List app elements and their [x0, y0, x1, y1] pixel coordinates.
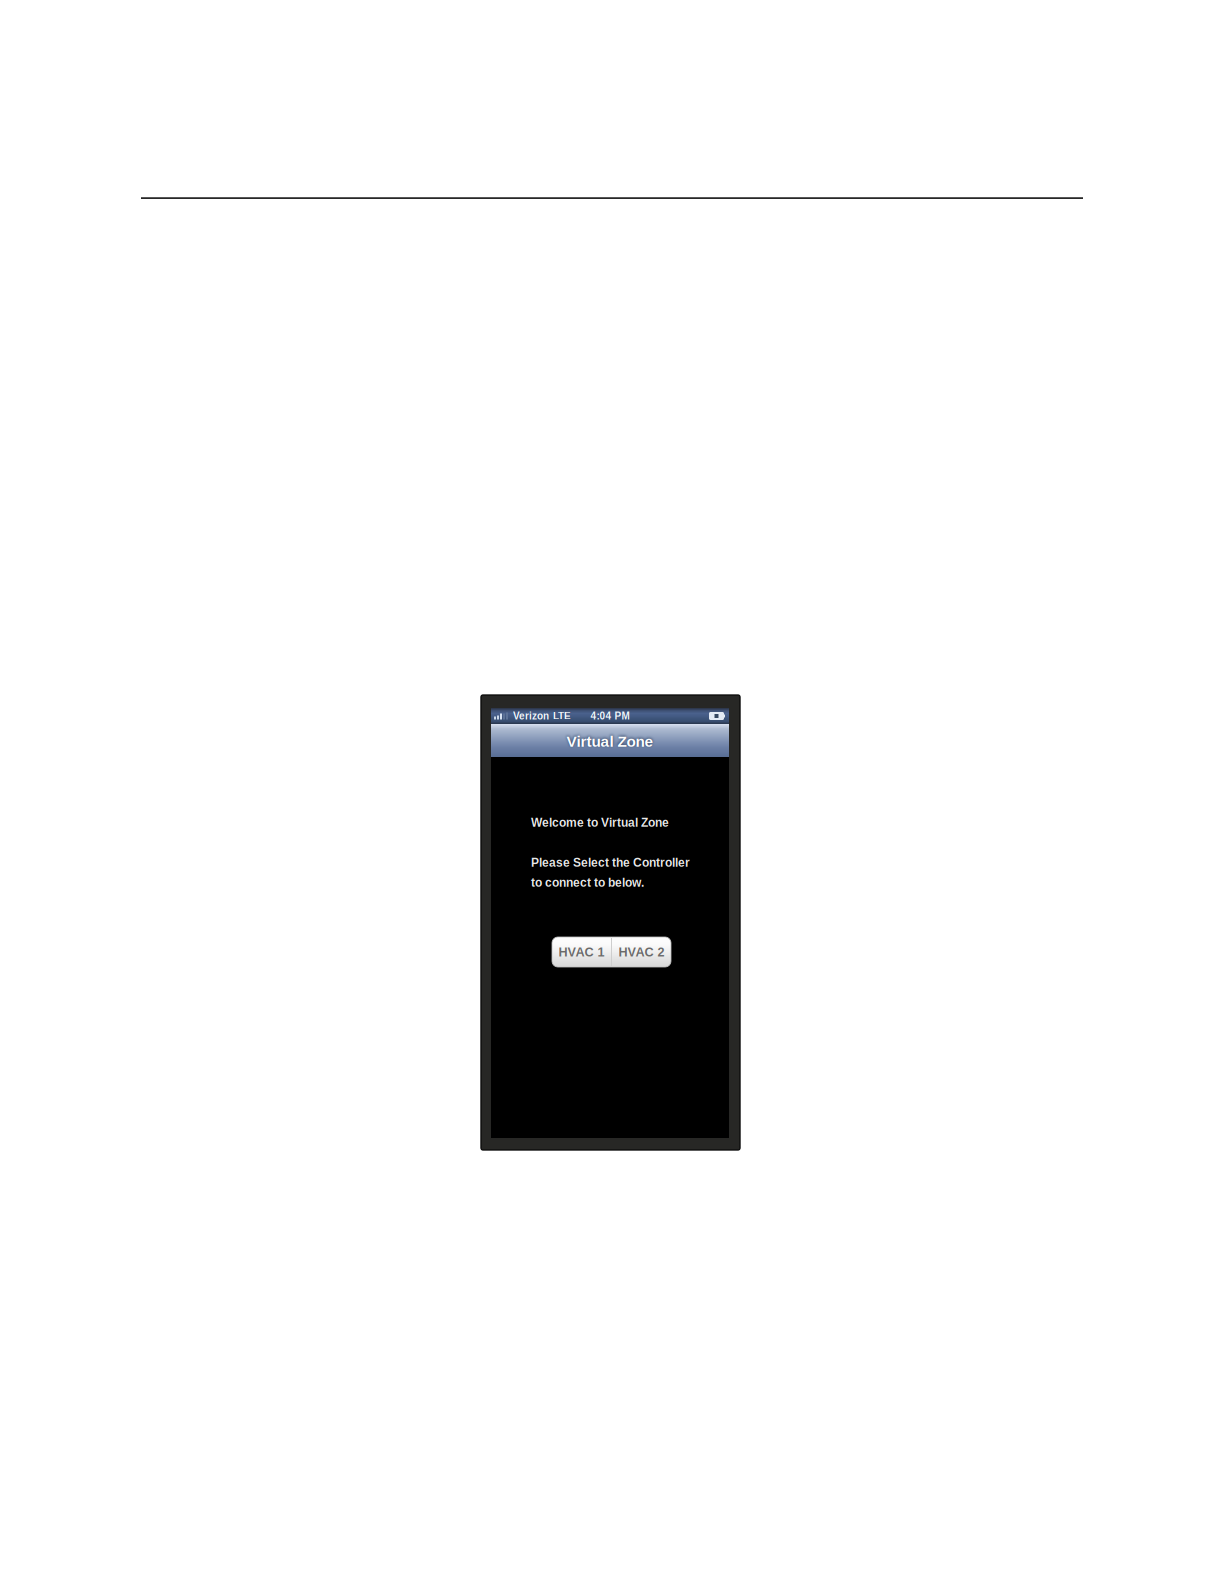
staticText: Welcome to Virtual Zone — [531, 816, 669, 829]
staticText: HVAC 1 — [558, 945, 604, 959]
staticText: Verizon — [513, 710, 549, 722]
staticText: LTE — [553, 710, 571, 722]
staticText: HVAC 2 — [618, 945, 664, 959]
staticText: Please Select the Controller — [531, 856, 690, 869]
staticText: 4:04 PM — [590, 710, 629, 722]
staticText: Virtual Zone — [566, 733, 653, 750]
button[interactable]: HVAC 2 — [612, 937, 671, 967]
button[interactable]: HVAC 1 — [552, 937, 611, 967]
staticText: to connect to below. — [531, 876, 644, 889]
